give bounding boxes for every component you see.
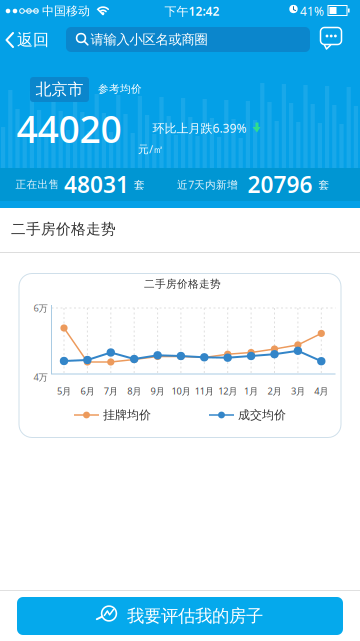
staticText: 7月 bbox=[104, 385, 118, 397]
staticText: 请输入小区名或商圈 bbox=[90, 31, 207, 48]
staticText: 12月 bbox=[218, 385, 237, 397]
button[interactable]: 搜索 bbox=[66, 27, 310, 52]
staticText: 正在出售 bbox=[15, 178, 59, 191]
staticText: 北京市 bbox=[35, 80, 83, 99]
staticText: 中国移动 bbox=[42, 4, 90, 18]
staticText: 参考均价 bbox=[98, 82, 142, 95]
staticText: 4万 bbox=[33, 371, 47, 383]
staticText: 48031 bbox=[64, 169, 129, 199]
button[interactable]: 我要评估我的房子 bbox=[17, 597, 343, 635]
staticText: 二手房价格走势 bbox=[144, 277, 221, 290]
staticText: 9月 bbox=[151, 385, 165, 397]
button[interactable]: 北京市 bbox=[30, 77, 89, 102]
staticText: 1月 bbox=[244, 385, 258, 397]
button[interactable]: 返回 bbox=[0, 22, 56, 58]
staticText: 41% bbox=[300, 3, 324, 19]
staticText: 环比上月跌6.39% bbox=[152, 120, 246, 136]
staticText: 下午12:42 bbox=[164, 3, 219, 19]
staticText: 2月 bbox=[267, 385, 281, 397]
staticText: 3月 bbox=[291, 385, 305, 397]
staticText: 二手房价格走势 bbox=[11, 220, 116, 238]
staticText: 6月 bbox=[80, 385, 94, 397]
staticText: 返回 bbox=[17, 30, 49, 50]
staticText: 成交均价 bbox=[238, 408, 286, 422]
staticText: 元/㎡ bbox=[138, 142, 164, 156]
staticText: 10月 bbox=[171, 385, 190, 397]
staticText: 5月 bbox=[57, 385, 71, 397]
staticText: 挂牌均价 bbox=[103, 408, 151, 422]
staticText: 8月 bbox=[127, 385, 141, 397]
staticText: 套 bbox=[318, 178, 329, 191]
staticText: 20796 bbox=[247, 169, 312, 199]
staticText: 4月 bbox=[314, 385, 328, 397]
staticText: 套 bbox=[134, 178, 145, 191]
staticText: 44020 bbox=[16, 104, 121, 153]
staticText: 我要评估我的房子 bbox=[127, 605, 263, 627]
staticText: 6万 bbox=[33, 302, 47, 314]
staticText: 近7天内新增 bbox=[177, 177, 238, 192]
staticText: 11月 bbox=[195, 385, 214, 397]
button[interactable]: 消息 bbox=[320, 27, 342, 49]
